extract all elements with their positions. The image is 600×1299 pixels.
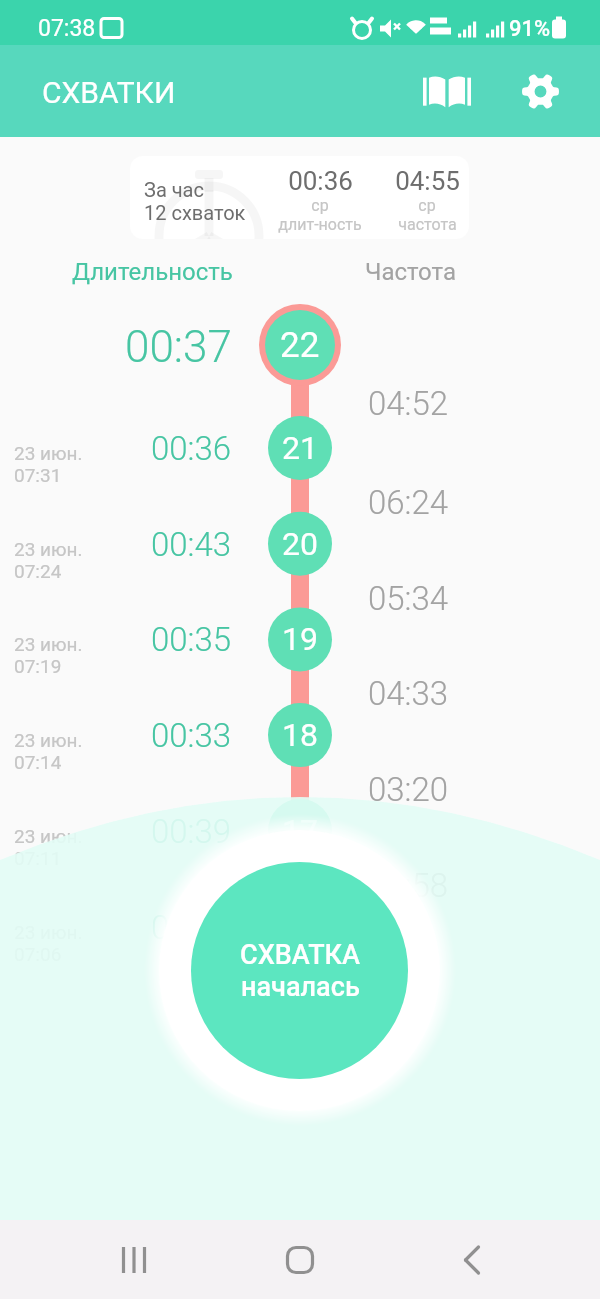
staticText: 23 июн. <box>14 825 83 847</box>
staticText: длит-ность <box>278 215 362 234</box>
staticText: 00:37 <box>125 321 232 369</box>
staticText: 23 июн. <box>14 538 83 560</box>
button[interactable]: Длительность <box>72 258 233 286</box>
staticText: 16 <box>282 908 318 946</box>
staticText: 04:33 <box>368 674 449 713</box>
staticText: СХВАТКИ <box>42 75 176 110</box>
staticText: ср <box>418 196 436 215</box>
staticText: 19 <box>282 620 318 658</box>
staticText: 22 <box>280 325 320 366</box>
button[interactable]: За час <box>130 156 469 239</box>
staticText: 23 июн. <box>14 442 83 464</box>
button[interactable]: Частота <box>365 258 456 286</box>
staticText: 07:24 <box>14 560 62 582</box>
staticText: 23 июн. <box>14 633 83 655</box>
staticText: 05:34 <box>368 579 449 618</box>
staticText: 04:58 <box>368 866 449 905</box>
staticText: 00:36 <box>151 429 232 468</box>
button[interactable]: Settings <box>504 55 576 127</box>
staticText: 23 июн. <box>14 729 83 751</box>
staticText: частота <box>398 215 457 234</box>
staticText: 00:33 <box>151 716 232 755</box>
button[interactable]: Home <box>260 1220 340 1299</box>
staticText: 00:43 <box>151 525 232 564</box>
staticText: 18 <box>282 716 318 754</box>
staticText: 07:31 <box>14 464 62 486</box>
button[interactable]: СХВАТКА <box>159 830 440 1111</box>
staticText: 00:41 <box>151 908 232 947</box>
staticText: 21 <box>282 429 318 467</box>
staticText: 12 схваток <box>144 201 246 224</box>
staticText: 00:35 <box>151 620 232 659</box>
button[interactable]: Recents <box>94 1220 174 1299</box>
staticText: СХВАТКА <box>240 939 360 971</box>
staticText: 20 <box>282 525 318 563</box>
staticText: 07:19 <box>14 655 62 677</box>
button[interactable]: Guide <box>411 55 483 127</box>
staticText: 07:14 <box>14 751 62 773</box>
staticText: 06:24 <box>368 483 449 522</box>
staticText: 04:52 <box>368 384 449 423</box>
staticText: 00:39 <box>151 812 232 851</box>
staticText: ср <box>311 196 329 215</box>
staticText: 04:55 <box>395 166 460 196</box>
staticText: 07:11 <box>14 847 62 869</box>
staticText: 07:38 <box>38 15 96 42</box>
staticText: Частота <box>365 258 456 286</box>
staticText: 17 <box>282 812 318 850</box>
staticText: Длительность <box>72 258 233 286</box>
staticText: 91% <box>509 16 551 42</box>
button[interactable]: Back <box>432 1220 512 1299</box>
staticText: 00:36 <box>288 166 353 196</box>
staticText: За час <box>144 178 204 201</box>
staticText: 03:20 <box>368 770 449 809</box>
staticText: началась <box>241 971 360 1003</box>
